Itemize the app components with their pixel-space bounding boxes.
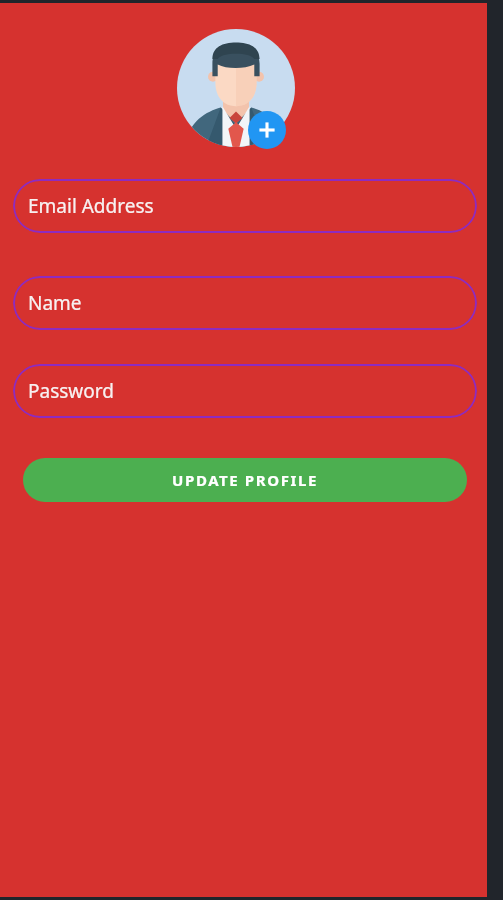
staticText: Password <box>28 378 114 404</box>
button[interactable]: Name <box>13 276 477 330</box>
button[interactable]: Email Address <box>13 179 477 233</box>
staticText: Email Address <box>28 193 154 219</box>
staticText: UPDATE PROFILE <box>172 470 318 490</box>
button[interactable]: Change profile photo <box>176 29 312 151</box>
button[interactable]: Password <box>13 364 477 418</box>
staticText: Name <box>28 290 82 316</box>
button[interactable]: UPDATE PROFILE <box>23 458 467 502</box>
